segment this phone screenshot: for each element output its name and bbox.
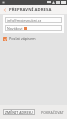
button[interactable]: Novákovi xyxy=(5,25,62,31)
button[interactable]: ZMĚNIT ADRESU xyxy=(3,109,35,115)
staticText: Poslat zápisem xyxy=(9,36,36,41)
staticText: ZMĚNIT ADRESU xyxy=(5,110,33,115)
button[interactable]: POKRAČOVAT xyxy=(38,109,67,115)
staticText: Novákovi xyxy=(7,26,23,31)
button[interactable]: Back xyxy=(0,5,9,14)
button[interactable]: info@mojesnubni.cz xyxy=(5,17,62,23)
staticText: PŘEPRAVNÍ ADRESA xyxy=(9,7,52,13)
staticText: info@mojesnubni.cz xyxy=(7,18,42,23)
staticText: POKRAČOVAT xyxy=(41,110,64,115)
button[interactable]: Poslat zápisem xyxy=(3,35,64,42)
